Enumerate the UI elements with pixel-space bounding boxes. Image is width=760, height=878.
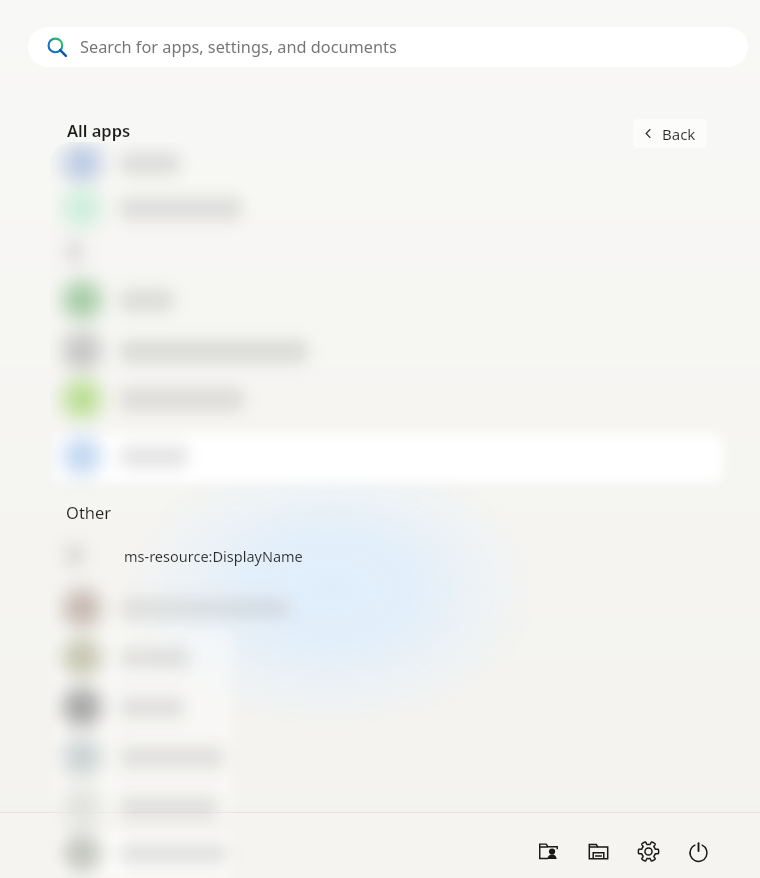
button[interactable]: User folder — [523, 826, 573, 876]
button[interactable]: Power — [673, 826, 723, 876]
staticText: Other — [66, 501, 112, 523]
button[interactable]: Back — [633, 119, 707, 148]
staticText: All apps — [67, 119, 131, 141]
button[interactable]: Documents folder — [573, 826, 623, 876]
button[interactable]: Settings — [623, 826, 673, 876]
button[interactable]: Search for apps, settings, and documents — [28, 27, 748, 67]
staticText: Back — [662, 124, 696, 144]
staticText: Search for apps, settings, and documents — [80, 36, 397, 58]
staticText: ms-resource:DisplayName — [124, 546, 303, 566]
